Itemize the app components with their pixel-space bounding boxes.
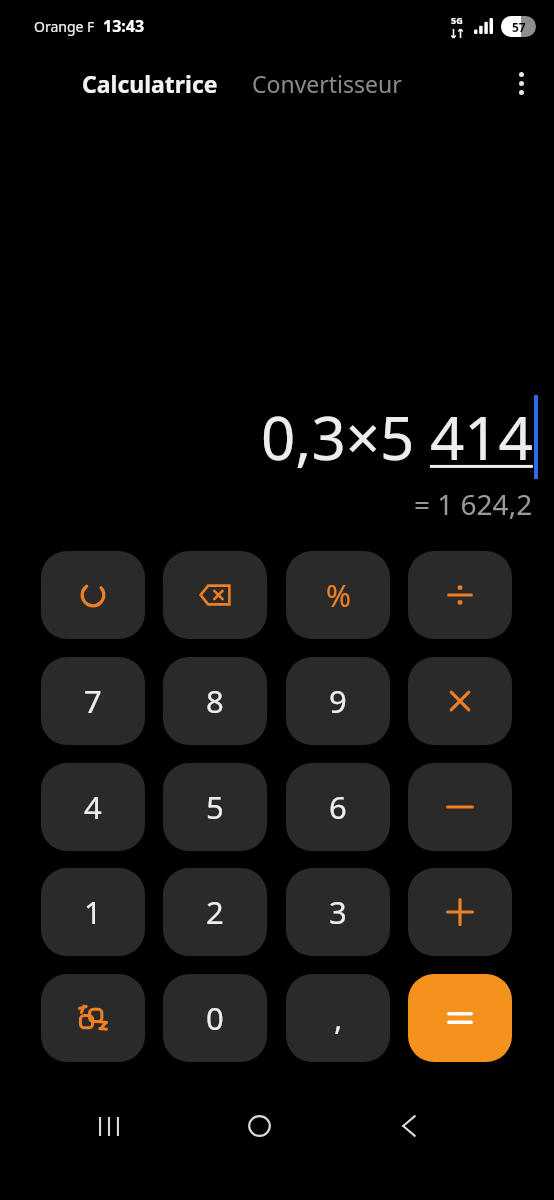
button[interactable]: 5 [163, 763, 267, 851]
staticText: 7 [84, 680, 102, 722]
staticText: Convertisseur [252, 68, 402, 99]
button[interactable]: Scientific functions [41, 974, 145, 1062]
staticText: 0,3×5 414 [261, 396, 533, 478]
staticText: 3 [329, 891, 347, 933]
button[interactable]: Add [408, 868, 512, 956]
staticText: 2 [206, 891, 224, 933]
staticText: 4 [84, 786, 102, 828]
staticText: % [326, 575, 351, 616]
button[interactable] [41, 551, 145, 639]
button[interactable]: Equals [408, 974, 512, 1062]
button[interactable]: Calculatrice [78, 64, 222, 103]
button[interactable]: Backspace [163, 551, 267, 639]
staticText: Orange F [34, 17, 95, 36]
staticText: = 1 624,2 [414, 485, 533, 523]
button[interactable]: More options [498, 60, 544, 106]
button[interactable]: Convertisseur [248, 64, 406, 103]
button[interactable]: , [286, 974, 390, 1062]
button[interactable]: Recent apps [78, 1098, 140, 1154]
button[interactable]: Subtract [408, 763, 512, 851]
button[interactable]: 7 [41, 657, 145, 745]
staticText: 5G [451, 14, 463, 26]
button[interactable]: 6 [286, 763, 390, 851]
button[interactable]: 9 [286, 657, 390, 745]
button[interactable]: Multiply [408, 657, 512, 745]
staticText: 13:43 [103, 15, 145, 37]
button[interactable]: % [286, 551, 390, 639]
button[interactable]: 0 [163, 974, 267, 1062]
staticText: 0 [206, 997, 224, 1039]
button[interactable]: 2 [163, 868, 267, 956]
button[interactable]: 8 [163, 657, 267, 745]
button[interactable]: 4 [41, 763, 145, 851]
staticText: 5 [206, 786, 224, 828]
button[interactable]: Back [378, 1098, 440, 1154]
button[interactable]: Divide [408, 551, 512, 639]
staticText: 6 [329, 786, 347, 828]
staticText: 57 [512, 19, 526, 35]
staticText: Calculatrice [82, 68, 218, 99]
button[interactable]: 1 [41, 868, 145, 956]
button[interactable]: Home [228, 1098, 290, 1154]
staticText: , [334, 997, 343, 1039]
staticText: 8 [206, 680, 224, 722]
button[interactable]: 3 [286, 868, 390, 956]
staticText: 9 [329, 680, 347, 722]
staticText: 1 [84, 891, 102, 933]
